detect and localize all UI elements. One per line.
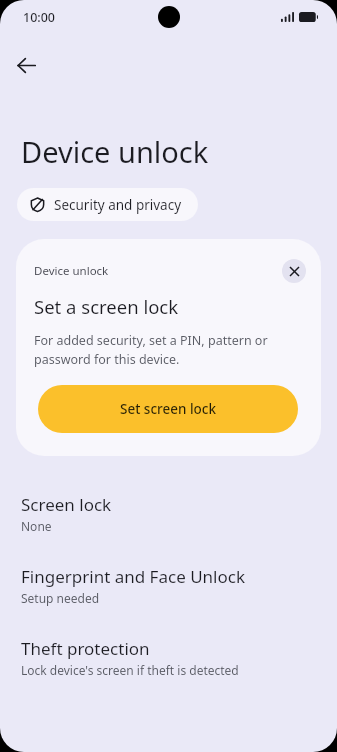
button[interactable]: Set screen lock bbox=[38, 385, 298, 433]
staticText: 10:00 bbox=[23, 9, 56, 26]
staticText: Screen lock bbox=[21, 493, 112, 516]
staticText: Device unlock bbox=[21, 132, 209, 171]
button[interactable]: Theft protection bbox=[0, 637, 337, 678]
staticText: Setup needed bbox=[21, 590, 100, 606]
button[interactable]: Back bbox=[8, 47, 44, 83]
button[interactable]: Fingerprint and Face Unlock bbox=[0, 565, 337, 606]
staticText: Lock device's screen if theft is detecte… bbox=[21, 662, 239, 678]
button[interactable]: Screen lock bbox=[0, 493, 337, 534]
staticText: Set screen lock bbox=[120, 400, 217, 418]
staticText: Set a screen lock bbox=[34, 294, 179, 319]
staticText: Device unlock bbox=[34, 263, 282, 279]
staticText: None bbox=[21, 518, 52, 534]
staticText: Theft protection bbox=[21, 637, 150, 660]
staticText: Security and privacy bbox=[54, 196, 182, 214]
button[interactable]: Security and privacy bbox=[17, 188, 198, 221]
staticText: For added security, set a PIN, pattern o… bbox=[34, 332, 294, 368]
staticText: Fingerprint and Face Unlock bbox=[21, 565, 245, 588]
button[interactable]: Dismiss bbox=[282, 259, 306, 283]
